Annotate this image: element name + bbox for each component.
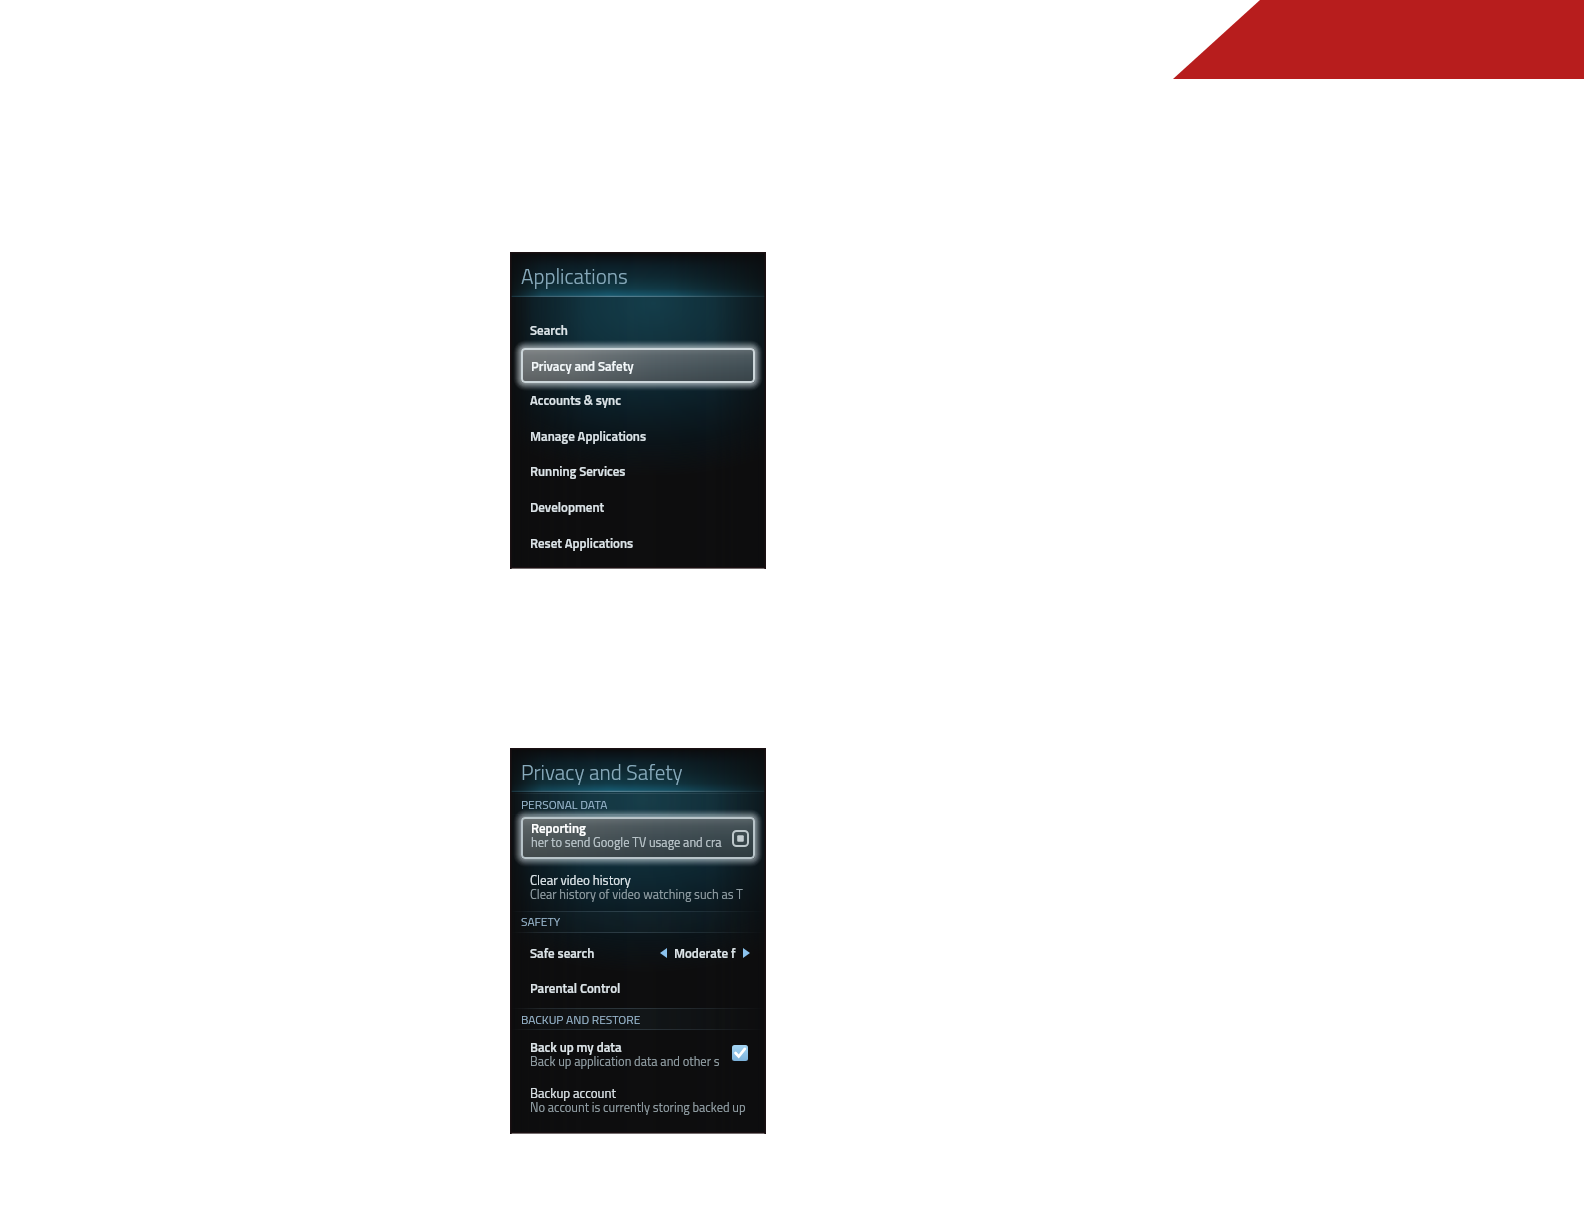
other: Next option [743,948,750,958]
button[interactable]: Back up my data checkbox, checked [732,1045,748,1061]
button[interactable]: Privacy and Safety [516,343,760,388]
button[interactable]: Running Services [511,456,765,486]
button[interactable]: Reporting [516,812,760,864]
button[interactable]: Search [511,315,765,345]
staticText: Development [530,497,605,517]
staticText: Reset Applications [530,533,634,553]
staticText: No account is currently storing backed u… [530,1098,746,1116]
button[interactable]: Safe search [511,938,765,968]
staticText: Safe search [530,943,595,963]
button[interactable]: Development [511,492,765,522]
staticText: her to send Google TV usage and cra [531,833,722,852]
staticText: Accounts & sync [530,390,621,410]
staticText: Clear video history [530,870,631,890]
button[interactable]: Accounts & sync [511,385,765,415]
button[interactable]: Manage Applications [511,421,765,451]
staticText: Applications [521,260,628,292]
staticText: BACKUP AND RESTORE [521,1010,641,1028]
button[interactable]: Back up my data [511,1037,765,1075]
button[interactable]: Reset Applications [511,528,765,558]
button[interactable]: Parental Control [511,973,765,1003]
staticText: Running Services [530,461,626,481]
staticText: Privacy and Safety [531,356,634,376]
staticText: Backup account [530,1083,616,1103]
button[interactable]: Backup account [511,1083,765,1121]
button[interactable]: Reporting checkbox, unchecked [733,831,748,846]
staticText: Back up my data [530,1037,622,1057]
staticText: Manage Applications [530,426,646,446]
staticText: Privacy and Safety [521,756,683,788]
staticText: Parental Control [530,978,621,998]
staticText: SAFETY [521,912,561,930]
staticText: PERSONAL DATA [521,795,608,813]
other: Previous option [660,948,667,958]
staticText: Reporting [531,818,586,838]
staticText: Moderate f [674,943,736,963]
button[interactable]: Clear video history [511,870,765,908]
staticText: Clear history of video watching such as … [530,885,743,903]
staticText: Search [530,320,568,340]
staticText: Back up application data and other s [530,1052,720,1070]
